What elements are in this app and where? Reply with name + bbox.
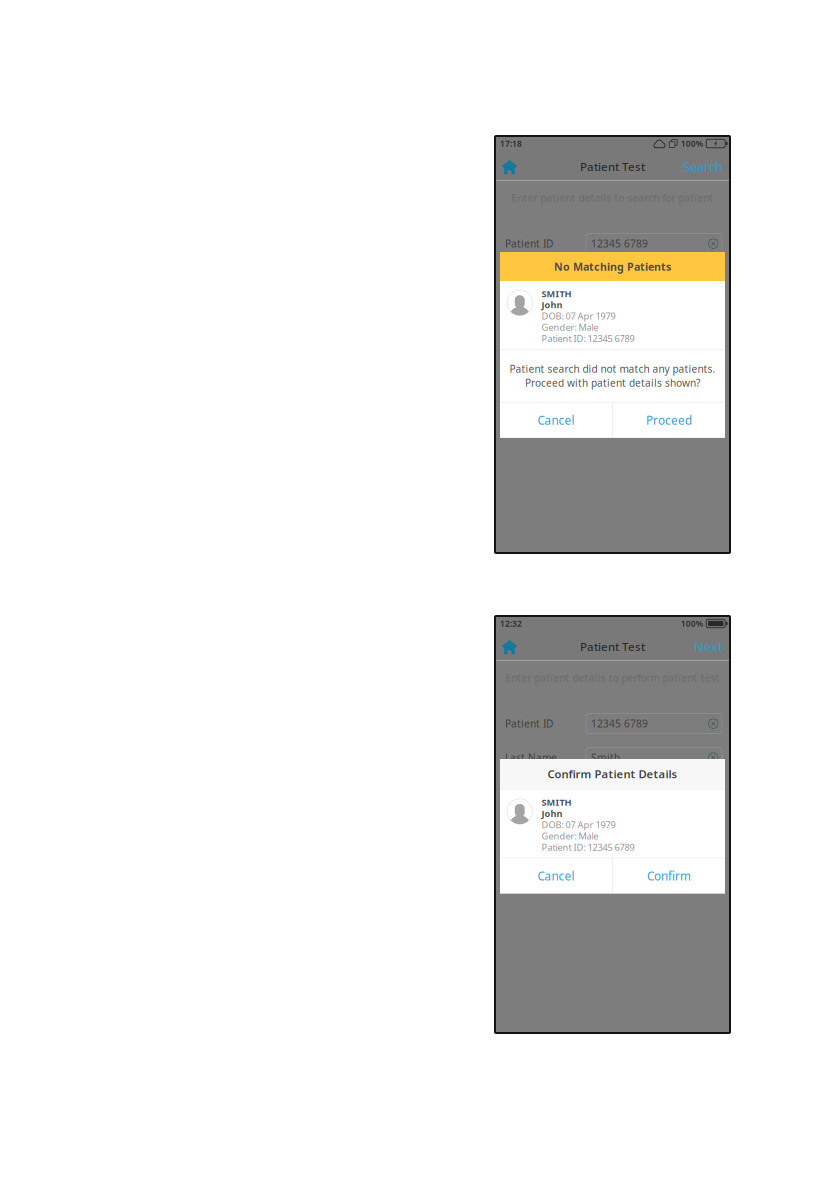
staticText: Search [683,158,723,175]
button[interactable]: Cancel [500,403,612,438]
staticText: Last Name [505,751,557,764]
staticText: DOB: 07 Apr 1979 [541,818,615,831]
staticText: 12:32 [500,618,522,629]
staticText: Patient Test [580,639,645,654]
staticText: John [541,298,562,311]
staticText: 12345 6789 [591,717,648,731]
staticText: 100% [681,618,703,629]
button[interactable]: Search [673,149,730,182]
staticText: SMITH [541,287,571,300]
button[interactable]: 12345 6789 [586,234,722,254]
button[interactable]: 12345 6789 [586,714,722,734]
button[interactable]: Proceed [613,403,725,438]
button[interactable]: Home [495,630,527,660]
staticText: Proceed [646,412,692,428]
button[interactable]: Confirm [613,858,725,893]
staticText: Enter patient details to perform patient… [505,671,719,685]
staticText: 12345 6789 [591,237,648,251]
staticText: Confirm [647,868,691,884]
button[interactable]: Smith [586,748,722,768]
staticText: Enter patient details to search for pati… [511,191,713,205]
staticText: Cancel [538,412,575,428]
staticText: Patient search did not match any patient… [509,362,715,376]
staticText: 17:18 [500,138,522,149]
staticText: Confirm Patient Details [547,766,677,782]
staticText: Proceed with patient details shown? [525,376,700,390]
button[interactable]: Home [495,150,527,180]
staticText: Patient ID [505,717,553,730]
button[interactable]: Next [684,629,730,662]
button[interactable]: Cancel [500,858,612,893]
staticText: Gender: Male [541,830,598,842]
staticText: No Matching Patients [554,259,671,274]
staticText: Patient ID: 12345 6789 [541,332,634,345]
staticText: Patient Test [580,159,645,174]
staticText: Gender: Male [541,321,598,333]
staticText: SMITH [541,796,571,808]
staticText: Smith [591,751,620,765]
staticText: Next [694,638,723,655]
staticText: Patient ID [505,237,553,250]
staticText: DOB: 07 Apr 1979 [541,310,615,322]
staticText: Patient ID: 12345 6789 [541,841,634,853]
staticText: Cancel [538,868,575,884]
staticText: John [541,807,562,820]
staticText: 100% [681,138,703,149]
